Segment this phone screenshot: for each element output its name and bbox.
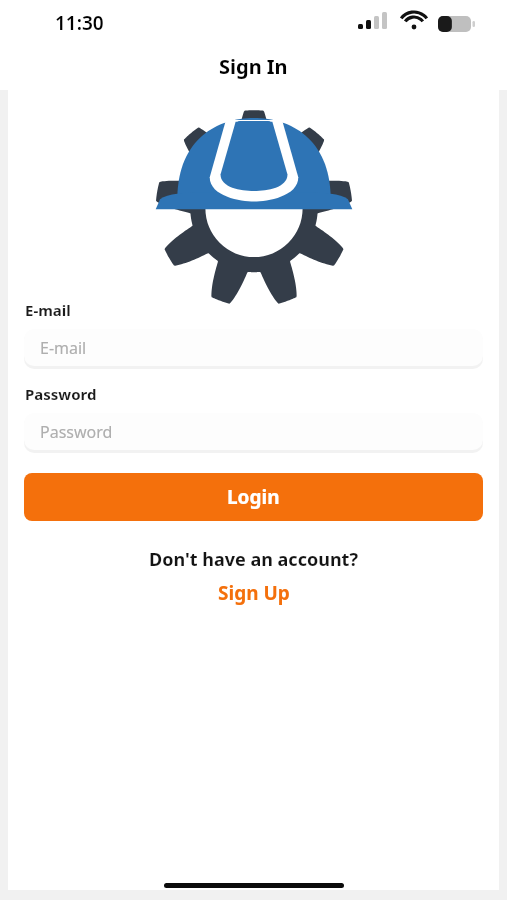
staticText: E-mail	[40, 337, 87, 359]
staticText: Don't have an account?	[8, 547, 499, 572]
button[interactable]: Sign Up	[210, 578, 298, 608]
button[interactable]: E-mail	[24, 329, 483, 366]
staticText: E-mail	[25, 300, 71, 320]
staticText: Login	[227, 484, 280, 510]
button[interactable]: Password	[24, 413, 483, 450]
staticText: Sign Up	[218, 580, 290, 606]
button[interactable]: Login	[24, 473, 483, 521]
staticText: Password	[40, 421, 113, 443]
staticText: Sign In	[219, 53, 288, 80]
staticText: Password	[25, 384, 97, 404]
staticText: 11:30	[55, 10, 104, 36]
